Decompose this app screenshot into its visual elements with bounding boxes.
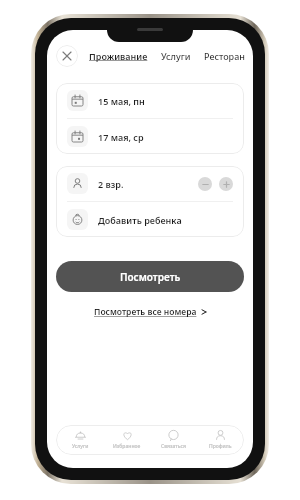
staticText: Посмотреть все номера: [94, 306, 197, 318]
button[interactable]: Decrease guests: [198, 177, 212, 191]
button[interactable]: Связаться: [151, 430, 195, 450]
button[interactable]: 15 мая, пн: [56, 83, 244, 118]
staticText: 15 мая, пн: [98, 95, 145, 107]
button[interactable]: Ресторан: [204, 50, 245, 62]
button[interactable]: 17 мая, ср: [56, 119, 244, 154]
button[interactable]: Профиль: [198, 430, 242, 450]
staticText: Ресторан: [204, 50, 245, 62]
staticText: Добавить ребенка: [98, 214, 182, 226]
staticText: Услуги: [161, 50, 191, 62]
button[interactable]: Посмотреть: [56, 261, 244, 292]
button[interactable]: Добавить ребенка: [56, 202, 244, 237]
button[interactable]: Посмотреть все номера: [94, 306, 207, 318]
button[interactable]: Проживание: [89, 50, 148, 62]
staticText: Услуги: [72, 443, 89, 450]
button[interactable]: Increase guests: [219, 177, 233, 191]
staticText: Профиль: [209, 443, 232, 450]
button[interactable]: Избранное: [105, 430, 149, 450]
staticText: Посмотреть: [120, 270, 181, 284]
staticText: Проживание: [89, 50, 148, 62]
button[interactable]: Close: [56, 45, 78, 67]
staticText: 17 мая, ср: [98, 131, 144, 143]
staticText: Избранное: [113, 443, 141, 450]
button[interactable]: 2 взр.: [56, 166, 244, 201]
staticText: Связаться: [161, 443, 186, 450]
staticText: 2 взр.: [98, 178, 124, 190]
button[interactable]: Услуги: [58, 430, 102, 450]
button[interactable]: Услуги: [161, 50, 191, 62]
